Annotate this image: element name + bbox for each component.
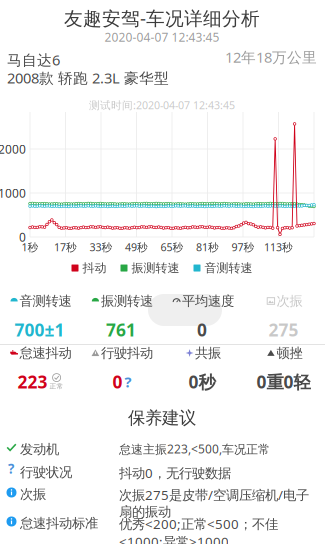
- staticText: 音测转速: [20, 293, 72, 309]
- staticText: 275: [268, 318, 298, 341]
- staticText: 700±1: [15, 318, 65, 341]
- staticText: 振测转速: [131, 261, 179, 275]
- staticText: 优秀<200;正常<500；不佳<1000;异常>1000: [119, 515, 278, 544]
- staticText: 65秒: [160, 240, 183, 254]
- staticText: 次振: [276, 293, 302, 309]
- staticText: 2020-04-07 12:43:45: [104, 29, 219, 45]
- staticText: 223: [18, 370, 48, 393]
- staticText: 0: [19, 229, 26, 245]
- staticText: 正常: [50, 382, 64, 390]
- staticText: 次振275是皮带/空调压缩机/电子扇的振动: [119, 486, 309, 520]
- staticText: 友趣安驾-车况详细分析: [64, 6, 260, 30]
- staticText: 2008款 轿跑 2.3L 豪华型: [7, 68, 169, 87]
- staticText: 49秒: [125, 240, 148, 254]
- staticText: 音测转速: [204, 261, 252, 275]
- staticText: 测试时间:2020-04-07 12:43:45: [89, 98, 235, 112]
- staticText: 振测转速: [101, 293, 153, 309]
- staticText: 0秒: [189, 370, 216, 393]
- staticText: 共振: [195, 345, 221, 361]
- staticText: 113秒: [264, 240, 293, 254]
- staticText: 怠速主振223,<500,车况正常: [119, 441, 270, 457]
- staticText: 33秒: [89, 240, 112, 254]
- staticText: 马自达6: [7, 50, 60, 69]
- staticText: 12年18万公里: [225, 47, 317, 67]
- staticText: 抖动: [82, 261, 106, 275]
- staticText: ?: [124, 372, 131, 391]
- staticText: 81秒: [196, 240, 219, 254]
- staticText: 2000: [0, 141, 26, 157]
- staticText: 顿挫: [276, 345, 302, 361]
- staticText: 1000: [0, 185, 26, 201]
- staticText: 怠速抖动: [20, 345, 72, 361]
- staticText: 0: [112, 370, 122, 393]
- staticText: 761: [106, 318, 136, 341]
- staticText: 平均速度: [182, 293, 234, 309]
- staticText: 0: [197, 318, 207, 341]
- staticText: 保养建议: [128, 407, 196, 429]
- staticText: 抖动0，无行驶数据: [119, 464, 231, 482]
- staticText: 97秒: [231, 240, 254, 254]
- staticText: ?: [8, 460, 14, 477]
- staticText: 怠速抖动标准: [20, 515, 98, 531]
- staticText: 行驶状况: [20, 464, 72, 480]
- staticText: 发动机: [20, 441, 59, 457]
- staticText: 17秒: [54, 240, 77, 254]
- staticText: 0重0轻: [256, 370, 310, 393]
- staticText: 行驶抖动: [101, 345, 153, 361]
- staticText: 次振: [20, 486, 46, 502]
- staticText: 1秒: [21, 240, 38, 254]
